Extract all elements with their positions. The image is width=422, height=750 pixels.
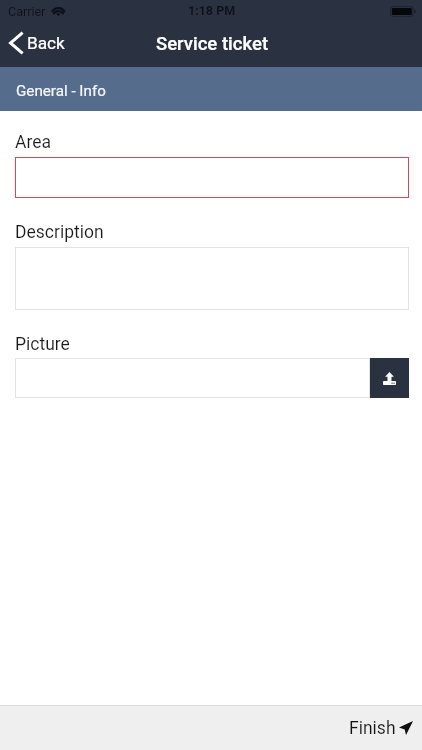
- staticText: Back: [27, 33, 65, 53]
- staticText: General - Info: [16, 82, 106, 100]
- staticText: 1:18 PM: [188, 3, 236, 18]
- staticText: Area: [15, 132, 51, 153]
- button[interactable]: Back: [0, 27, 77, 63]
- button[interactable]: [15, 157, 409, 198]
- button[interactable]: [15, 358, 370, 398]
- button[interactable]: Upload picture: [370, 358, 409, 398]
- button[interactable]: [15, 247, 409, 310]
- staticText: Picture: [15, 334, 70, 355]
- staticText: Finish: [349, 718, 396, 739]
- staticText: Description: [15, 222, 104, 243]
- button[interactable]: General - Info: [0, 67, 422, 111]
- staticText: Carrier: [8, 4, 46, 19]
- button[interactable]: Finish: [333, 712, 422, 745]
- staticText: Service ticket: [156, 33, 269, 55]
